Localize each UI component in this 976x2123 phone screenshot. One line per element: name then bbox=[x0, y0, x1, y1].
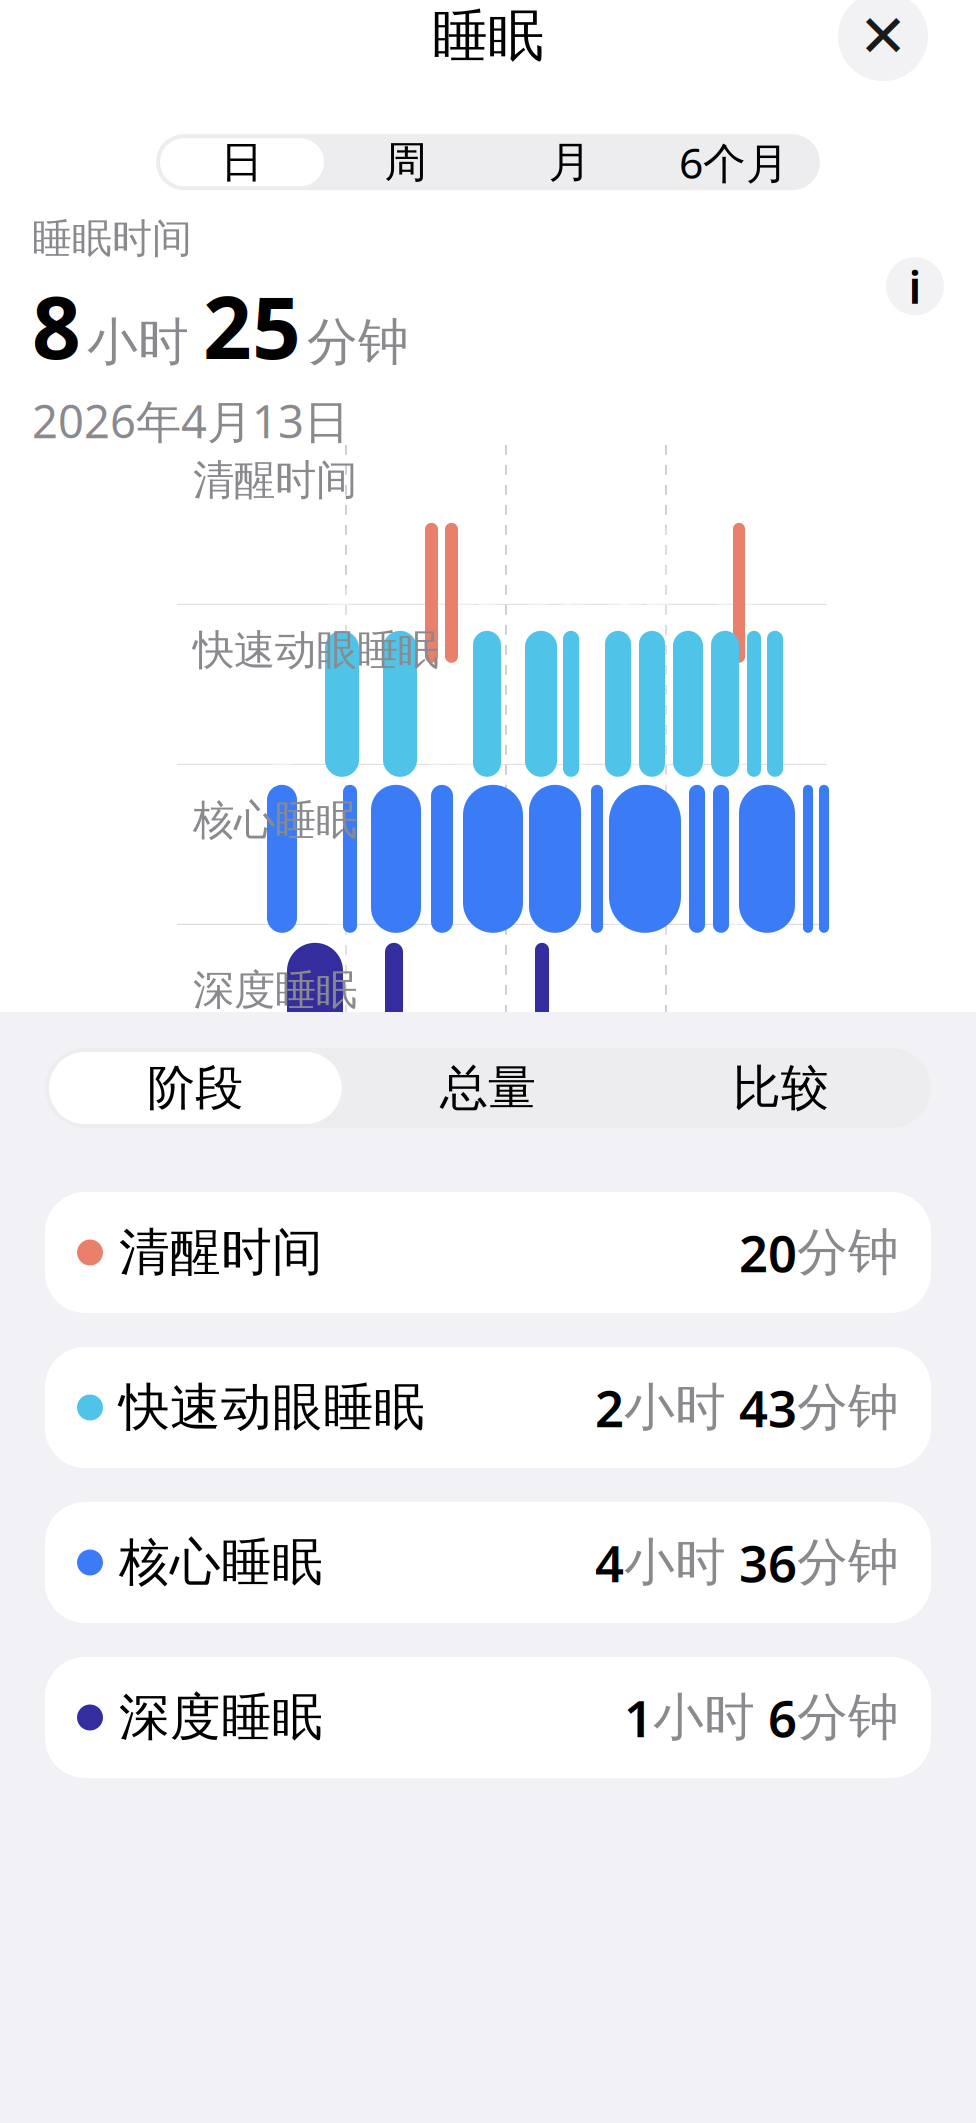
button[interactable]: 关闭 bbox=[838, 0, 928, 81]
button[interactable]: 清醒时间 bbox=[45, 1192, 931, 1313]
staticText: 2026年4月13日 bbox=[32, 391, 349, 451]
staticText: 快速动眼睡眠 bbox=[119, 1376, 425, 1439]
staticText: 分钟 bbox=[307, 311, 409, 373]
staticText: 小时 bbox=[653, 1686, 755, 1749]
button[interactable]: 快速动眼睡眠 bbox=[45, 1347, 931, 1468]
staticText: 小时 bbox=[87, 311, 189, 373]
staticText: 分钟 bbox=[797, 1531, 899, 1594]
staticText: 8 bbox=[32, 269, 81, 383]
button[interactable]: 阶段 bbox=[49, 1048, 342, 1128]
staticText: 36 bbox=[726, 1529, 797, 1596]
staticText: i bbox=[908, 256, 921, 316]
staticText: 比较 bbox=[733, 1058, 829, 1117]
staticText: 90 bbox=[851, 54, 891, 100]
staticText: 睡眠 bbox=[432, 2, 544, 71]
button[interactable]: 核心睡眠 bbox=[45, 1502, 931, 1623]
button[interactable]: 深度睡眠 bbox=[45, 1657, 931, 1778]
button[interactable]: 日 bbox=[160, 134, 324, 190]
staticText: 05:00 bbox=[498, 1107, 605, 1164]
staticText: 核心睡眠 bbox=[193, 795, 357, 846]
staticText: 4 bbox=[595, 1529, 624, 1596]
staticText: 周 bbox=[384, 136, 427, 188]
button[interactable]: 周 bbox=[324, 134, 488, 190]
button[interactable]: 6个月 bbox=[652, 134, 816, 190]
staticText: 快速动眼睡眠 bbox=[193, 625, 439, 676]
staticText: 6 bbox=[755, 1684, 797, 1751]
staticText: 分钟 bbox=[797, 1376, 899, 1439]
staticText: 02:00 bbox=[338, 1107, 445, 1164]
button[interactable]: 信息 bbox=[886, 256, 944, 316]
staticText: 6个月 bbox=[679, 134, 789, 190]
staticText: 分钟 bbox=[797, 1221, 899, 1284]
staticText: 清醒时间 bbox=[193, 455, 357, 506]
staticText: 2 bbox=[595, 1374, 624, 1441]
staticText: 阶段 bbox=[147, 1058, 243, 1117]
button[interactable]: 比较 bbox=[634, 1048, 927, 1128]
button[interactable]: 月 bbox=[488, 134, 652, 190]
staticText: 小时 bbox=[624, 1376, 726, 1439]
staticText: 睡眠时间 bbox=[32, 214, 192, 263]
staticText: 分钟 bbox=[797, 1686, 899, 1749]
button[interactable]: 总量 bbox=[342, 1048, 634, 1128]
staticText: 20 bbox=[739, 1219, 797, 1286]
staticText: 小时 bbox=[624, 1531, 726, 1594]
staticText: ✕ bbox=[858, 3, 907, 69]
staticText: 43 bbox=[726, 1374, 797, 1441]
staticText: 日 bbox=[220, 136, 263, 188]
staticText: 深度睡眠 bbox=[193, 965, 357, 1016]
staticText: 08:00 bbox=[658, 1107, 765, 1164]
staticText: 月 bbox=[548, 136, 591, 188]
staticText: 23:00 bbox=[178, 1107, 285, 1164]
staticText: 核心睡眠 bbox=[119, 1531, 323, 1594]
staticText: 25 bbox=[203, 269, 301, 383]
staticText: 1 bbox=[624, 1684, 653, 1751]
staticText: 清醒时间 bbox=[119, 1221, 323, 1284]
staticText: 深度睡眠 bbox=[119, 1686, 323, 1749]
staticText: 总量 bbox=[440, 1058, 536, 1117]
